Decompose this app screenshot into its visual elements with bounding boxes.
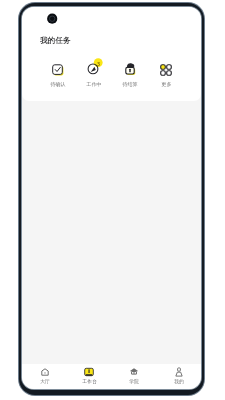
button[interactable]: 学院 xyxy=(111,364,156,389)
staticText: 工作台 xyxy=(82,378,97,384)
button[interactable]: 大厅 xyxy=(23,364,67,389)
staticText: 更多 xyxy=(161,81,172,87)
staticText: 我的任务 xyxy=(40,36,71,46)
button[interactable]: 我的 xyxy=(156,364,201,389)
staticText: 3 xyxy=(97,60,101,67)
staticText: 我的 xyxy=(174,378,184,384)
staticText: 待确认 xyxy=(50,81,66,87)
staticText: 大厅 xyxy=(40,378,50,384)
button[interactable]: 3 xyxy=(76,61,112,87)
button[interactable]: 待结算 xyxy=(112,61,148,87)
button[interactable]: 待确认 xyxy=(39,61,76,87)
button[interactable]: 工作台 xyxy=(67,364,111,389)
button[interactable]: 更多 xyxy=(148,61,184,87)
staticText: 学院 xyxy=(129,378,139,384)
staticText: 待结算 xyxy=(122,81,138,87)
staticText: 工作中 xyxy=(86,81,102,87)
